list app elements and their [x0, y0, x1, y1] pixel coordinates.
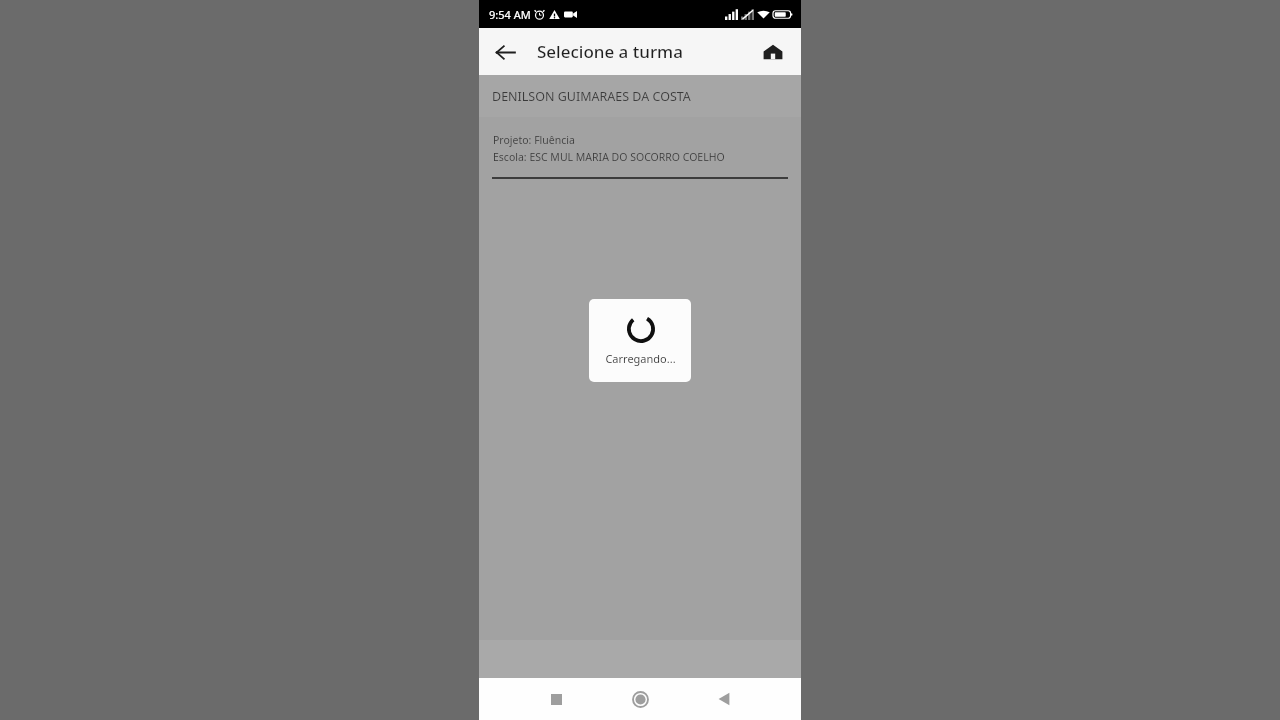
- staticText: Projeto: Fluência: [493, 133, 575, 147]
- staticText: Carregando...: [605, 351, 676, 366]
- button[interactable]: Back: [702, 678, 746, 720]
- button[interactable]: DENILSON GUIMARAES DA COSTA: [479, 75, 801, 117]
- staticText: 9:54 AM: [489, 7, 531, 22]
- button[interactable]: Back: [485, 32, 525, 72]
- staticText: Escola: ESC MUL MARIA DO SOCORRO COELHO: [493, 150, 725, 164]
- button[interactable]: Home: [618, 678, 662, 720]
- staticText: Selecione a turma: [537, 40, 683, 63]
- button[interactable]: Home: [753, 32, 793, 72]
- staticText: DENILSON GUIMARAES DA COSTA: [492, 88, 691, 105]
- button[interactable]: Recent apps: [534, 678, 578, 720]
